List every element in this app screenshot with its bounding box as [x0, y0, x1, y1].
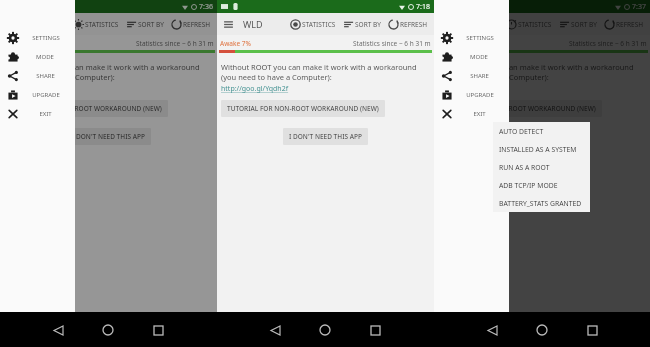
button[interactable]: Recents — [358, 313, 392, 347]
button[interactable]: INSTALLED AS A SYSTEM APP — [493, 140, 590, 158]
button[interactable]: Back — [0, 13, 22, 35]
staticText: TUTORIAL FOR NON-ROOT WORKAROUND (NEW) — [227, 104, 379, 113]
staticText: I DON'T NEED THIS APP — [289, 132, 362, 141]
staticText: http://goo.gl/Yqdh2f — [438, 84, 506, 94]
button[interactable]: Back — [475, 313, 509, 347]
staticText: STATISTICS — [302, 20, 336, 29]
button[interactable]: RUN AS A ROOT — [493, 158, 590, 176]
button[interactable]: SORT BY — [558, 17, 598, 32]
button[interactable]: Back — [41, 313, 75, 347]
button[interactable]: SETTINGS — [0, 28, 75, 47]
staticText: MODE — [36, 53, 54, 61]
staticText: Without ROOT you can make it work with a… — [4, 62, 213, 82]
button[interactable]: SORT BY — [125, 17, 165, 32]
button[interactable]: UPGRADE — [434, 85, 509, 104]
staticText: REFRESH — [183, 20, 211, 29]
staticText: Awake 7% — [220, 39, 251, 48]
staticText: SETTINGS — [32, 34, 60, 42]
staticText: Statistics since ~ 6 h 31 m — [569, 39, 647, 48]
staticText: Awake 7% — [437, 39, 468, 48]
staticText: Statistics since ~ 6 h 31 m — [136, 39, 214, 48]
staticText: 7:37 — [632, 2, 646, 12]
button[interactable]: REFRESH — [170, 17, 212, 32]
button[interactable]: http://goo.gl/Yqdh2f — [438, 84, 506, 94]
button[interactable]: MODE — [434, 47, 509, 66]
button[interactable]: I DON'T NEED THIS APP — [500, 128, 585, 145]
staticText: ADB TCP/IP MODE — [499, 181, 558, 190]
button[interactable]: http://goo.gl/Yqdh2f — [4, 84, 72, 94]
button[interactable]: Back — [434, 13, 456, 35]
staticText: http://goo.gl/Yqdh2f — [4, 84, 72, 94]
button[interactable]: ADB TCP/IP MODE — [493, 176, 590, 194]
button[interactable]: SHARE — [434, 66, 509, 85]
button[interactable]: Home — [525, 313, 559, 347]
staticText: WLD — [243, 18, 263, 30]
button[interactable]: Back — [258, 313, 292, 347]
button[interactable]: AUTO DETECT — [493, 122, 590, 140]
staticText: I DON'T NEED THIS APP — [506, 132, 579, 141]
button[interactable]: TUTORIAL FOR NON-ROOT WORKAROUND (NEW) — [438, 100, 602, 117]
staticText: AUTO DETECT — [499, 127, 544, 136]
staticText: REFRESH — [400, 20, 428, 29]
button[interactable]: EXIT — [0, 104, 75, 123]
staticText: STATISTICS — [85, 20, 119, 29]
button[interactable]: Home — [308, 313, 342, 347]
button[interactable]: MODE — [0, 47, 75, 66]
staticText: http://goo.gl/Yqdh2f — [221, 84, 289, 94]
staticText: SHARE — [470, 72, 489, 80]
staticText: TUTORIAL FOR NON-ROOT WORKAROUND (NEW) — [444, 104, 596, 113]
button[interactable]: STATISTICS — [72, 17, 120, 32]
button[interactable]: REFRESH — [603, 17, 645, 32]
button[interactable]: SORT BY — [342, 17, 382, 32]
button[interactable]: SETTINGS — [434, 28, 509, 47]
staticText: EXIT — [39, 110, 52, 118]
staticText: MODE — [470, 53, 488, 61]
button[interactable]: I DON'T NEED THIS APP — [66, 128, 151, 145]
button[interactable]: SHARE — [0, 66, 75, 85]
button[interactable]: BATTERY_STATS GRANTED — [493, 194, 590, 212]
staticText: UPGRADE — [466, 91, 494, 99]
button[interactable]: I DON'T NEED THIS APP — [283, 128, 368, 145]
staticText: 7:18 — [416, 2, 430, 12]
staticText: EXIT — [473, 110, 486, 118]
button[interactable]: Recents — [141, 313, 175, 347]
staticText: 7:36 — [199, 2, 213, 12]
staticText: RUN AS A ROOT — [499, 163, 550, 172]
button[interactable]: STATISTICS — [505, 17, 553, 32]
staticText: SHARE — [36, 72, 55, 80]
staticText: TUTORIAL FOR NON-ROOT WORKAROUND (NEW) — [10, 104, 162, 113]
staticText: UPGRADE — [32, 91, 60, 99]
button[interactable]: STATISTICS — [289, 17, 337, 32]
button[interactable]: EXIT — [434, 104, 509, 123]
button[interactable]: UPGRADE — [0, 85, 75, 104]
button[interactable]: Recents — [575, 313, 609, 347]
button[interactable]: REFRESH — [387, 17, 429, 32]
button[interactable]: Open navigation drawer — [217, 13, 239, 35]
button[interactable]: TUTORIAL FOR NON-ROOT WORKAROUND (NEW) — [221, 100, 385, 117]
staticText: Without ROOT you can make it work with a… — [438, 62, 646, 82]
staticText: SETTINGS — [466, 34, 494, 42]
staticText: STATISTICS — [518, 20, 552, 29]
staticText: INSTALLED AS A SYSTEM APP — [499, 145, 590, 154]
staticText: BATTERY_STATS GRANTED — [499, 199, 582, 208]
staticText: SORT BY — [571, 20, 597, 29]
staticText: SORT BY — [138, 20, 164, 29]
staticText: I DON'T NEED THIS APP — [72, 132, 145, 141]
staticText: Without ROOT you can make it work with a… — [221, 62, 430, 82]
staticText: Statistics since ~ 6 h 31 m — [353, 39, 431, 48]
staticText: REFRESH — [616, 20, 644, 29]
button[interactable]: http://goo.gl/Yqdh2f — [221, 84, 289, 94]
staticText: Awake 7% — [3, 39, 34, 48]
staticText: SORT BY — [355, 20, 381, 29]
button[interactable]: Home — [91, 313, 125, 347]
button[interactable]: TUTORIAL FOR NON-ROOT WORKAROUND (NEW) — [4, 100, 168, 117]
